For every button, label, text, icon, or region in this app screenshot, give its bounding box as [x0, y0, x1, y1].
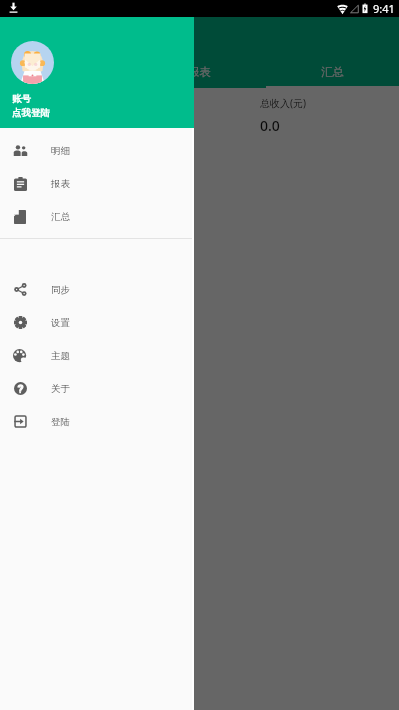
- button[interactable]: 关于: [0, 372, 192, 405]
- button[interactable]: 报表: [133, 58, 266, 86]
- staticText: 9:41: [373, 1, 395, 16]
- staticText: 主题: [51, 350, 70, 362]
- staticText: 汇总: [321, 65, 344, 79]
- staticText: 报表: [188, 65, 211, 79]
- button[interactable]: 汇总: [266, 58, 399, 86]
- staticText: 报表: [51, 178, 70, 190]
- staticText: 登陆: [51, 416, 70, 428]
- staticText: 设置: [51, 317, 70, 329]
- staticText: 同步: [51, 284, 70, 296]
- staticText: 账号: [12, 93, 31, 105]
- staticText: 明细: [51, 145, 70, 157]
- button[interactable]: 主题: [0, 339, 192, 372]
- button[interactable]: 汇总: [0, 200, 192, 233]
- staticText: 总收入(元): [260, 96, 306, 110]
- staticText: 汇总: [51, 211, 70, 223]
- staticText: 点我登陆: [12, 107, 50, 119]
- button[interactable]: 设置: [0, 306, 192, 339]
- button[interactable]: 明细: [0, 134, 192, 167]
- button[interactable]: 登陆: [0, 405, 192, 438]
- button[interactable]: 报表: [0, 167, 192, 200]
- staticText: 0.0: [260, 116, 280, 135]
- button[interactable]: 明细: [0, 58, 133, 86]
- staticText: 关于: [51, 383, 70, 395]
- button[interactable]: 同步: [0, 273, 192, 306]
